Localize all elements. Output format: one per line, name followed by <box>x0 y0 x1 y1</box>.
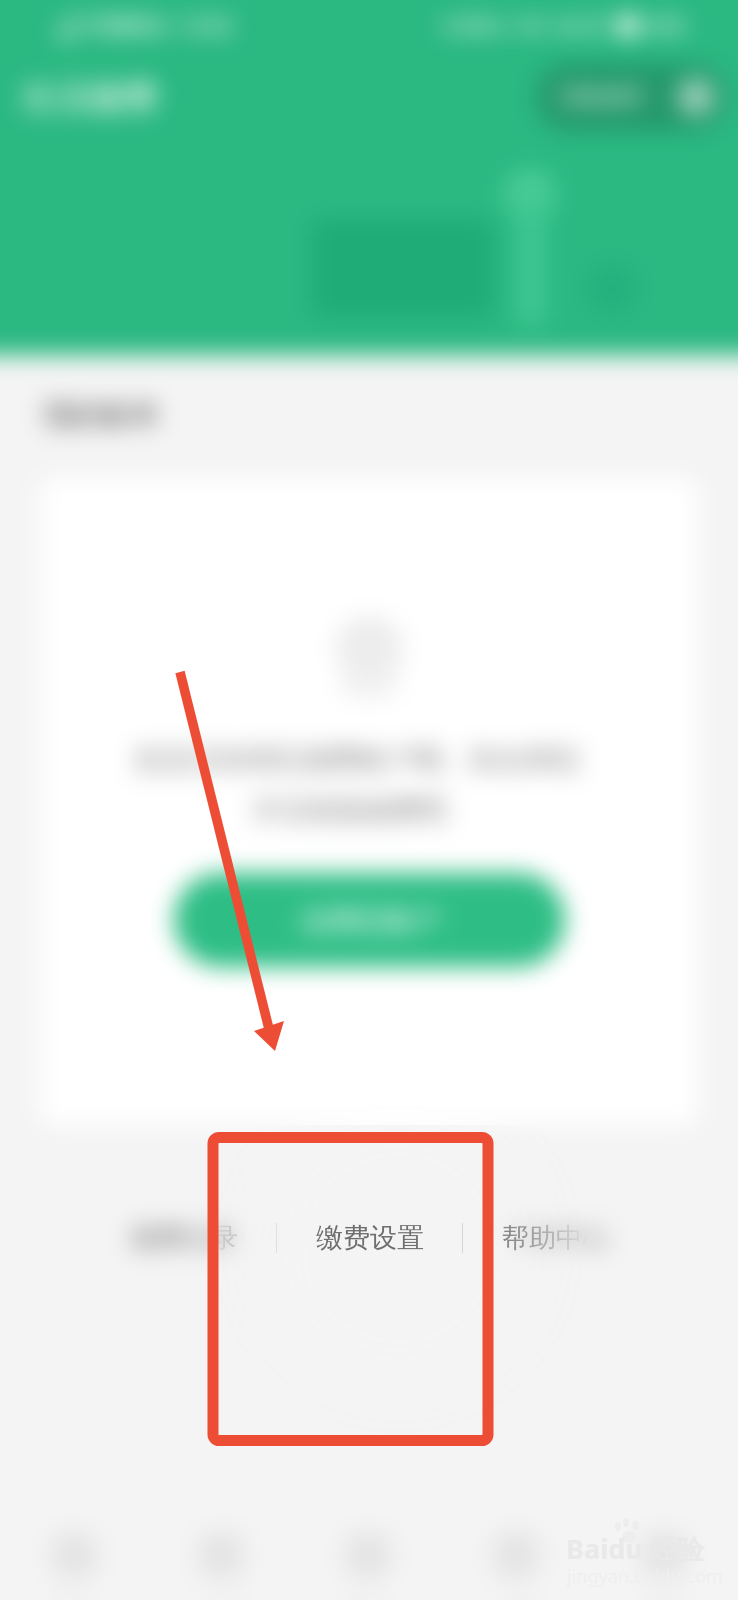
button[interactable]: 帮助中心 <box>463 1193 648 1283</box>
staticText: 切换城市 <box>558 83 646 111</box>
staticText: Baidu 经验 <box>566 1530 704 1567</box>
staticText: 去绑定账户 <box>300 903 440 938</box>
button[interactable]: 首页 <box>0 1470 147 1600</box>
button[interactable]: 首页 <box>0 1470 147 1600</box>
button[interactable]: 生活 <box>294 1470 442 1600</box>
button[interactable]: 缴费设置 <box>277 1193 462 1283</box>
button[interactable]: 切换城市 <box>536 64 727 130</box>
button[interactable]: 理财 <box>147 1470 294 1600</box>
staticText: 5.00K/s HD VoLTE <box>441 13 608 39</box>
button[interactable]: 缴费记录 <box>91 1193 276 1283</box>
button[interactable]: 切换城市 <box>536 64 727 130</box>
staticText: jingyan.baidu.com <box>567 1564 723 1589</box>
staticText: 缴费设置 <box>316 1221 424 1255</box>
staticText: 生活缴费 <box>22 76 158 119</box>
button[interactable]: 去绑定账户 <box>174 873 565 967</box>
staticText: 生活缴费 <box>22 76 158 119</box>
staticText: 帮助中心 <box>502 1221 610 1255</box>
staticText: 我的账单 <box>43 397 159 434</box>
staticText: 84% <box>648 13 686 39</box>
staticText: 开启便捷缴费吧 <box>252 793 448 828</box>
button[interactable]: 我的 <box>590 1470 738 1600</box>
staticText: 我的账单 <box>43 397 159 434</box>
staticText: 开启便捷缴费吧 <box>252 793 448 828</box>
button[interactable]: 生活 <box>294 1470 442 1600</box>
staticText: 切换城市 <box>558 83 646 111</box>
button[interactable]: 去绑定账户 <box>174 873 565 967</box>
button[interactable]: 消息 <box>442 1470 590 1600</box>
button[interactable]: 缴费记录 <box>91 1193 276 1283</box>
staticText: 5.00K/s HD VoLTE <box>441 13 608 39</box>
button[interactable]: 我的 <box>590 1470 738 1600</box>
staticText: 缴费设置 <box>316 1221 424 1255</box>
staticText: 中国移动 <box>82 13 166 39</box>
staticText: 去绑定账户 <box>300 903 440 938</box>
staticText: 缴费记录 <box>130 1221 238 1255</box>
staticText: 13:45 <box>178 12 232 41</box>
staticText: 您还没有绑定缴费账户哦，快去绑定 <box>134 742 582 777</box>
staticText: 中国移动 <box>82 13 166 39</box>
staticText: 帮助中心 <box>502 1221 610 1255</box>
button[interactable]: 消息 <box>442 1470 590 1600</box>
staticText: 13:45 <box>178 12 232 41</box>
button[interactable]: 理财 <box>147 1470 294 1600</box>
staticText: 84% <box>648 13 686 39</box>
staticText: 缴费记录 <box>130 1221 238 1255</box>
button[interactable]: 缴费设置 <box>277 1193 462 1283</box>
button[interactable]: 帮助中心 <box>463 1193 648 1283</box>
staticText: 您还没有绑定缴费账户哦，快去绑定 <box>134 742 582 777</box>
